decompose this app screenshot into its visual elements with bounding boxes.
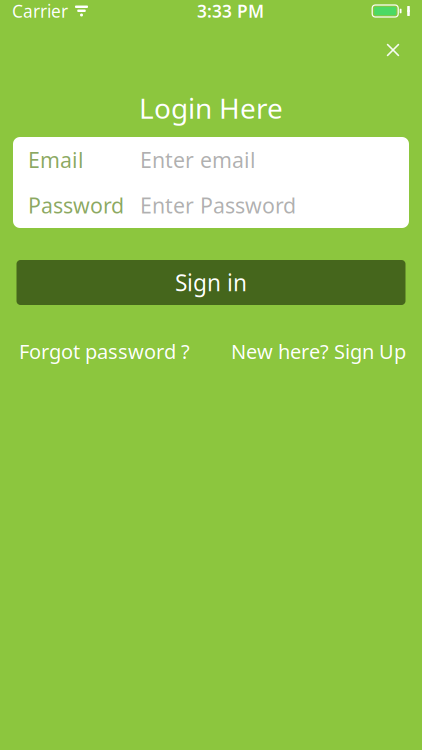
button[interactable]: Sign in [16,260,405,305]
button[interactable]: New here? Sign Up [231,330,406,373]
staticText: Forgot password ? [19,338,190,365]
staticText: Sign in [175,267,247,297]
staticText: Carrier [12,0,68,22]
staticText: Enter Password [140,191,296,219]
staticText: 3:33 PM [197,0,264,22]
staticText: Login Here [139,89,283,127]
staticText: Email [28,146,84,174]
button[interactable]: Close [371,28,415,72]
button[interactable]: Password [13,182,409,228]
button[interactable]: Forgot password ? [19,330,190,373]
staticText: Password [28,191,124,219]
button[interactable]: Email [13,137,409,182]
staticText: Enter email [140,146,256,174]
staticText: New here? Sign Up [231,338,406,365]
